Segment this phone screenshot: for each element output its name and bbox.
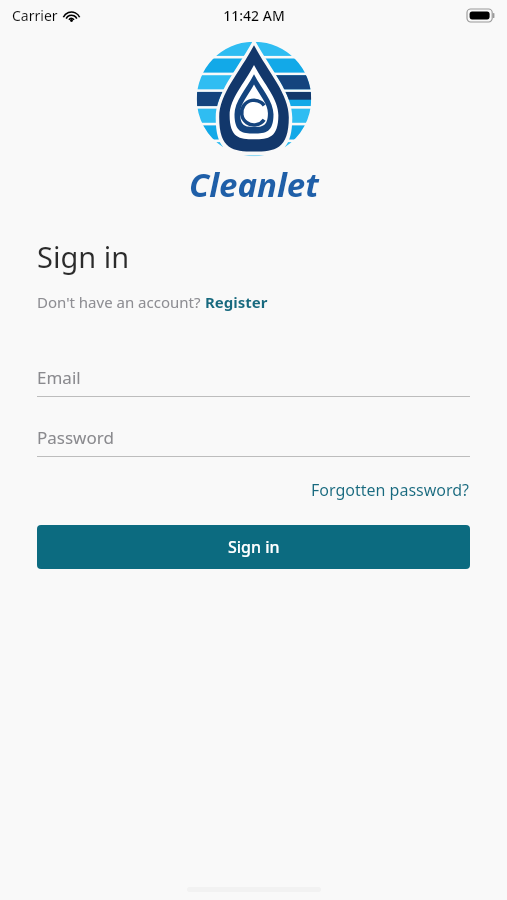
staticText: Sign in: [37, 237, 130, 276]
button[interactable]: Sign in: [37, 525, 470, 569]
staticText: Register: [205, 292, 268, 312]
staticText: 11:42 AM: [223, 6, 285, 25]
button[interactable]: Password: [37, 418, 470, 457]
staticText: Email: [37, 366, 81, 389]
staticText: Carrier: [12, 6, 58, 25]
staticText: Forgotten password?: [311, 479, 470, 501]
staticText: Cleanlet: [189, 162, 319, 207]
other: Wi-Fi: [64, 10, 79, 22]
button[interactable]: Register: [205, 292, 268, 312]
button[interactable]: Email: [37, 358, 470, 397]
staticText: Sign in: [228, 536, 280, 558]
other: Battery full: [467, 9, 495, 22]
staticText: Don't have an account?: [37, 292, 205, 312]
button[interactable]: Forgotten password?: [311, 479, 470, 501]
staticText: Password: [37, 426, 114, 449]
